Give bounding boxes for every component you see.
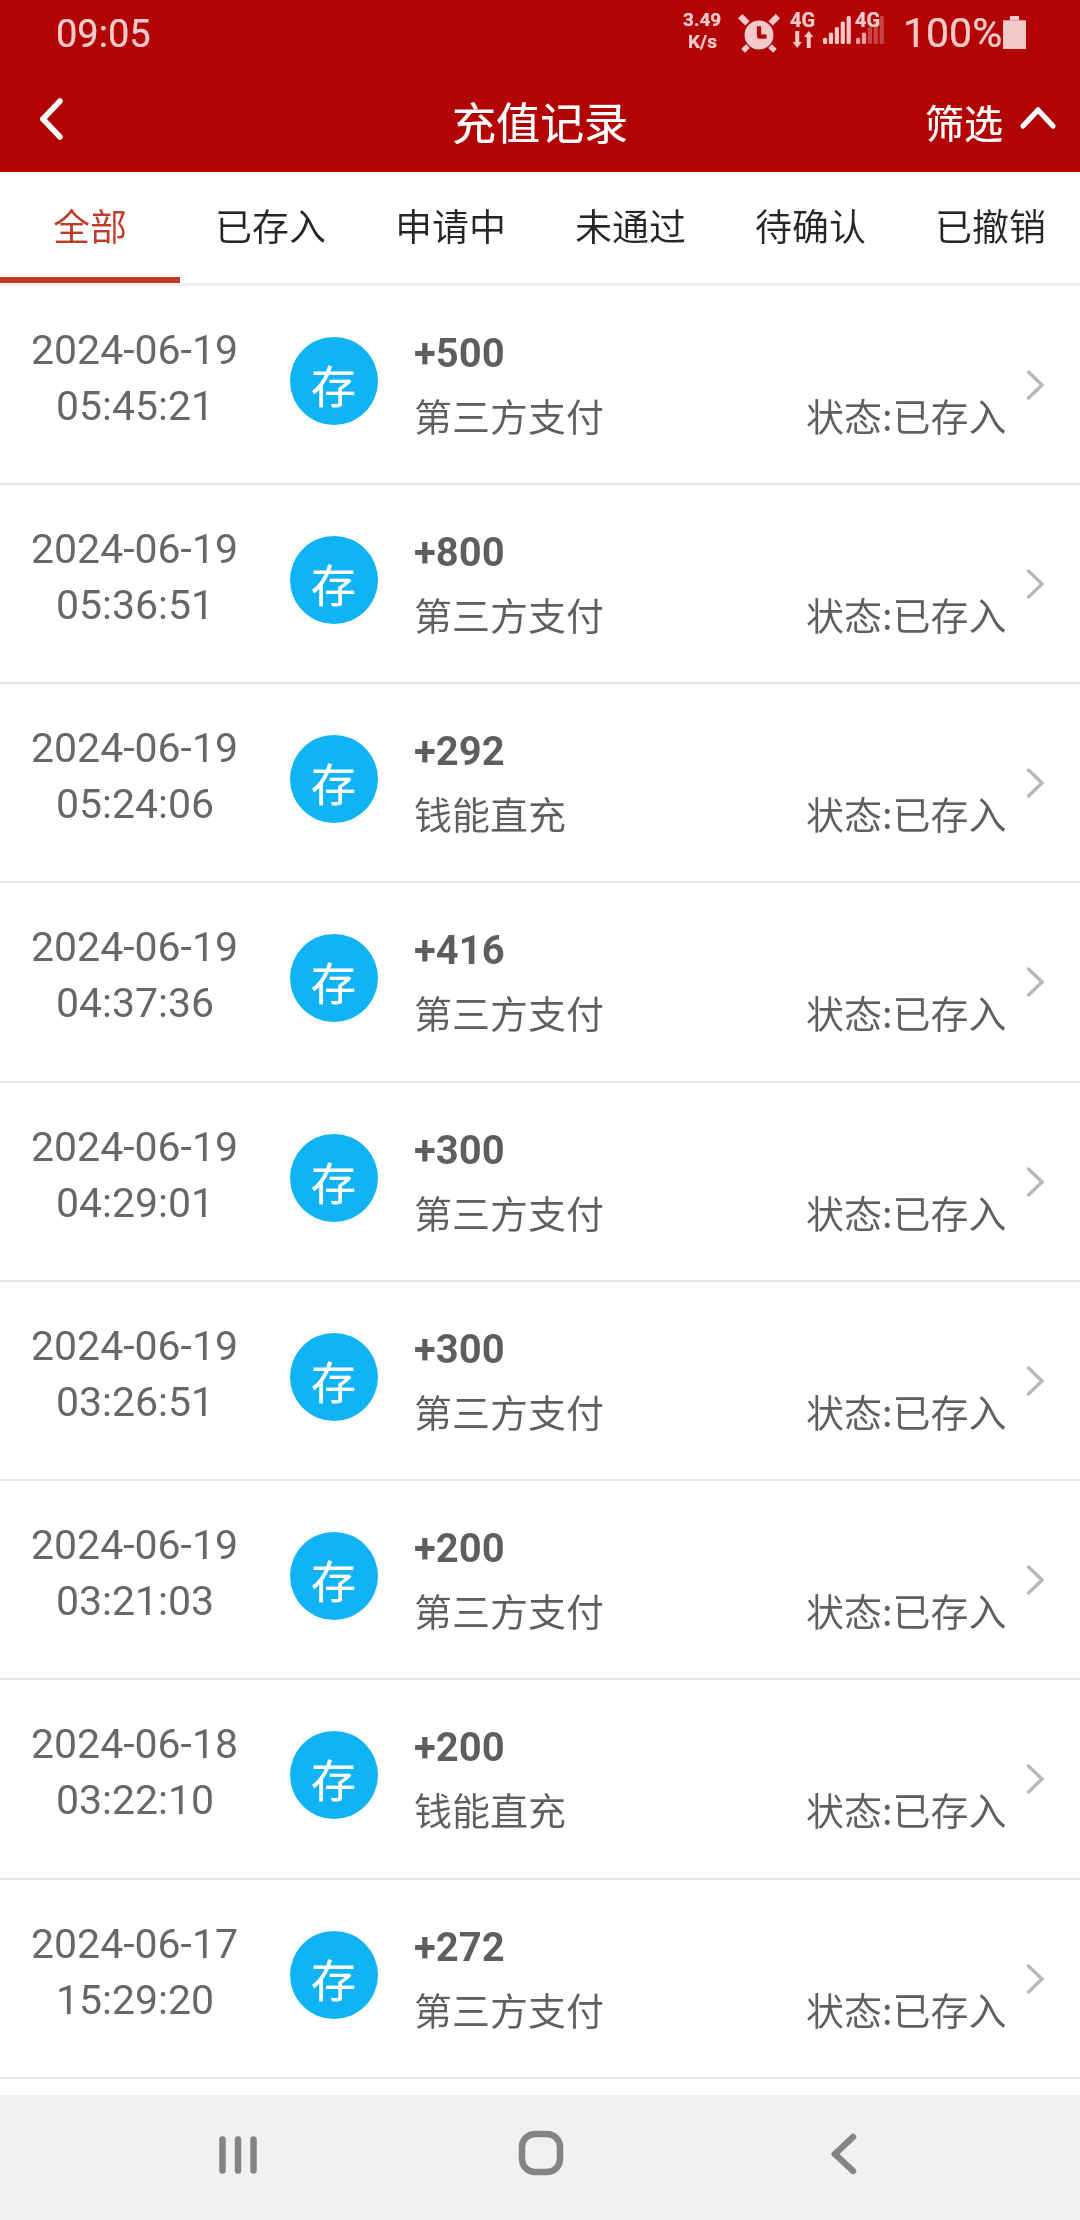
staticText: 09:05 <box>56 12 151 57</box>
staticText: 2024-06-19 <box>31 1521 239 1569</box>
button[interactable]: 2024-06-19 <box>0 1083 1080 1282</box>
button[interactable]: 2024-06-19 <box>0 883 1080 1083</box>
button[interactable]: 已撤销 <box>900 172 1080 286</box>
staticText: 2024-06-19 <box>31 525 239 573</box>
staticText: 筛选 <box>925 93 1004 149</box>
staticText: 状态:已存入 <box>806 1383 1007 1438</box>
staticText: 状态:已存入 <box>806 785 1007 840</box>
staticText: 状态:已存入 <box>806 1781 1007 1836</box>
staticText: +300 <box>414 1326 505 1373</box>
button[interactable]: Recent apps <box>178 2095 298 2220</box>
button[interactable]: Back <box>0 70 110 172</box>
staticText: 4G <box>790 8 816 31</box>
staticText: 03:22:10 <box>56 1776 215 1824</box>
staticText: 2024-06-19 <box>31 1322 239 1370</box>
staticText: K/s <box>688 30 717 52</box>
button[interactable]: 2024-06-19 <box>0 485 1080 684</box>
button[interactable]: 筛选 <box>925 70 1058 172</box>
staticText: 第三方支付 <box>414 586 605 641</box>
button[interactable]: 2024-06-17 <box>0 1880 1080 2079</box>
staticText: 第三方支付 <box>414 984 605 1039</box>
button[interactable]: 已存入 <box>180 172 360 286</box>
staticText: 钱能直充 <box>414 785 567 840</box>
staticText: 状态:已存入 <box>806 1582 1007 1637</box>
staticText: 状态:已存入 <box>806 1184 1007 1239</box>
button[interactable]: 2024-06-19 <box>0 286 1080 485</box>
button[interactable]: 申请中 <box>360 172 540 286</box>
button[interactable]: Back <box>782 2095 902 2220</box>
staticText: 第三方支付 <box>414 1981 605 2036</box>
staticText: 状态:已存入 <box>806 1981 1007 2036</box>
staticText: 3.49 <box>683 8 722 30</box>
staticText: 15:29:20 <box>56 1976 215 2024</box>
button[interactable]: 2024-06-19 <box>0 684 1080 883</box>
button[interactable]: 待确认 <box>720 172 900 286</box>
staticText: 2024-06-17 <box>31 1920 239 1968</box>
staticText: +416 <box>414 927 505 974</box>
staticText: 全部 <box>53 198 127 252</box>
staticText: 05:45:21 <box>56 382 215 430</box>
button[interactable]: 全部 <box>0 172 180 286</box>
staticText: 第三方支付 <box>414 1582 605 1637</box>
staticText: 03:26:51 <box>56 1378 215 1426</box>
staticText: 100% <box>903 9 1003 57</box>
staticText: 状态:已存入 <box>806 387 1007 442</box>
button[interactable]: 2024-06-19 <box>0 1282 1080 1481</box>
staticText: 2024-06-19 <box>31 326 239 374</box>
staticText: +500 <box>414 330 505 377</box>
staticText: 存 <box>311 352 357 417</box>
staticText: 未通过 <box>575 198 686 252</box>
staticText: 存 <box>311 1149 357 1214</box>
staticText: 04:37:36 <box>56 979 215 1027</box>
staticText: 2024-06-19 <box>31 923 239 971</box>
staticText: 存 <box>311 551 357 616</box>
staticText: 4G <box>855 8 881 31</box>
button[interactable]: 2024-06-19 <box>0 1481 1080 1680</box>
staticText: 2024-06-18 <box>31 1720 239 1768</box>
staticText: 申请中 <box>395 198 506 252</box>
button[interactable]: 2024-06-18 <box>0 1680 1080 1880</box>
staticText: 已撤销 <box>935 198 1046 252</box>
staticText: 存 <box>311 1746 357 1811</box>
staticText: +292 <box>414 728 505 775</box>
staticText: 钱能直充 <box>414 1781 567 1836</box>
button[interactable]: Home <box>481 2095 601 2220</box>
staticText: 待确认 <box>755 198 866 252</box>
staticText: +272 <box>414 1924 505 1971</box>
staticText: +800 <box>414 529 505 576</box>
staticText: 04:29:01 <box>56 1179 215 1227</box>
staticText: 05:24:06 <box>56 780 215 828</box>
staticText: 第三方支付 <box>414 387 605 442</box>
staticText: 第三方支付 <box>414 1184 605 1239</box>
staticText: 2024-06-19 <box>31 724 239 772</box>
staticText: +300 <box>414 1127 505 1174</box>
staticText: 存 <box>311 949 357 1014</box>
staticText: +200 <box>414 1525 505 1572</box>
staticText: 存 <box>311 1348 357 1413</box>
staticText: 状态:已存入 <box>806 586 1007 641</box>
button[interactable]: 未通过 <box>540 172 720 286</box>
staticText: 存 <box>311 1547 357 1612</box>
staticText: 充值记录 <box>452 89 628 153</box>
staticText: 03:21:03 <box>56 1577 215 1625</box>
staticText: 存 <box>311 750 357 815</box>
staticText: 第三方支付 <box>414 1383 605 1438</box>
staticText: +200 <box>414 1724 505 1771</box>
staticText: 状态:已存入 <box>806 984 1007 1039</box>
staticText: 已存入 <box>215 198 326 252</box>
staticText: 05:36:51 <box>56 581 215 629</box>
staticText: 2024-06-19 <box>31 1123 239 1171</box>
staticText: 存 <box>311 1946 357 2011</box>
